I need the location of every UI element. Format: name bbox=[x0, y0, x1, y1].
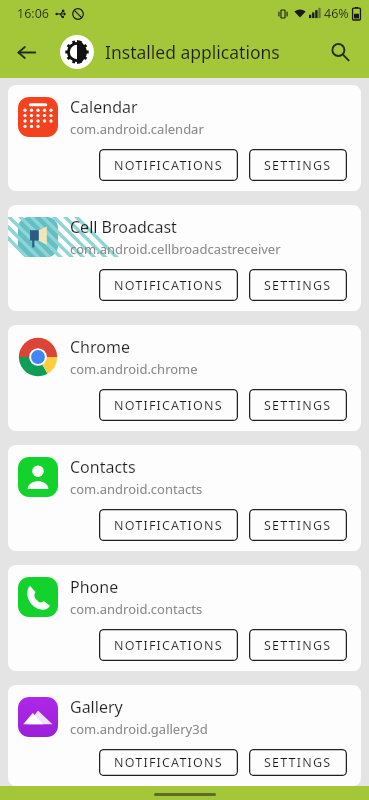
button[interactable]: NOTIFICATIONS bbox=[99, 149, 238, 181]
staticText: 46% bbox=[324, 5, 349, 22]
staticText: Gallery bbox=[70, 696, 123, 718]
staticText: com.android.contacts bbox=[70, 480, 203, 498]
staticText: Installed applications bbox=[105, 40, 280, 64]
button[interactable]: SETTINGS bbox=[249, 389, 347, 421]
button[interactable]: NOTIFICATIONS bbox=[99, 749, 238, 776]
staticText: NOTIFICATIONS bbox=[114, 754, 223, 771]
staticText: SETTINGS bbox=[264, 754, 332, 771]
button[interactable]: Back bbox=[8, 34, 44, 70]
staticText: com.android.chrome bbox=[70, 360, 198, 378]
button[interactable]: SETTINGS bbox=[249, 749, 347, 776]
button[interactable]: SETTINGS bbox=[249, 149, 347, 181]
button[interactable]: Gallery bbox=[8, 685, 361, 786]
staticText: SETTINGS bbox=[264, 157, 332, 174]
button[interactable]: NOTIFICATIONS bbox=[99, 389, 238, 421]
button[interactable]: Contacts bbox=[8, 445, 361, 551]
staticText: SETTINGS bbox=[264, 397, 332, 414]
staticText: NOTIFICATIONS bbox=[114, 637, 223, 654]
staticText: Phone bbox=[70, 576, 119, 598]
staticText: com.android.calendar bbox=[70, 120, 204, 138]
staticText: NOTIFICATIONS bbox=[114, 157, 223, 174]
button[interactable]: SETTINGS bbox=[249, 629, 347, 661]
staticText: Calendar bbox=[70, 96, 138, 118]
staticText: 16:06 bbox=[17, 5, 49, 22]
button[interactable]: SETTINGS bbox=[249, 509, 347, 541]
staticText: NOTIFICATIONS bbox=[114, 277, 223, 294]
button[interactable]: Search bbox=[321, 33, 359, 71]
staticText: com.android.contacts bbox=[70, 600, 203, 618]
button[interactable]: Chrome bbox=[8, 325, 361, 431]
staticText: SETTINGS bbox=[264, 517, 332, 534]
staticText: com.android.gallery3d bbox=[70, 720, 208, 738]
staticText: com.android.cellbroadcastreceiver bbox=[70, 240, 281, 258]
button[interactable]: Cell Broadcast bbox=[8, 205, 361, 311]
button[interactable]: NOTIFICATIONS bbox=[99, 509, 238, 541]
staticText: SETTINGS bbox=[264, 637, 332, 654]
staticText: NOTIFICATIONS bbox=[114, 397, 223, 414]
button[interactable]: Phone bbox=[8, 565, 361, 671]
button[interactable]: Calendar bbox=[8, 85, 361, 191]
button[interactable]: NOTIFICATIONS bbox=[99, 629, 238, 661]
staticText: Chrome bbox=[70, 336, 130, 358]
staticText: NOTIFICATIONS bbox=[114, 517, 223, 534]
staticText: SETTINGS bbox=[264, 277, 332, 294]
staticText: Contacts bbox=[70, 456, 136, 478]
button[interactable]: SETTINGS bbox=[249, 269, 347, 301]
staticText: Cell Broadcast bbox=[70, 216, 177, 238]
button[interactable]: NOTIFICATIONS bbox=[99, 269, 238, 301]
